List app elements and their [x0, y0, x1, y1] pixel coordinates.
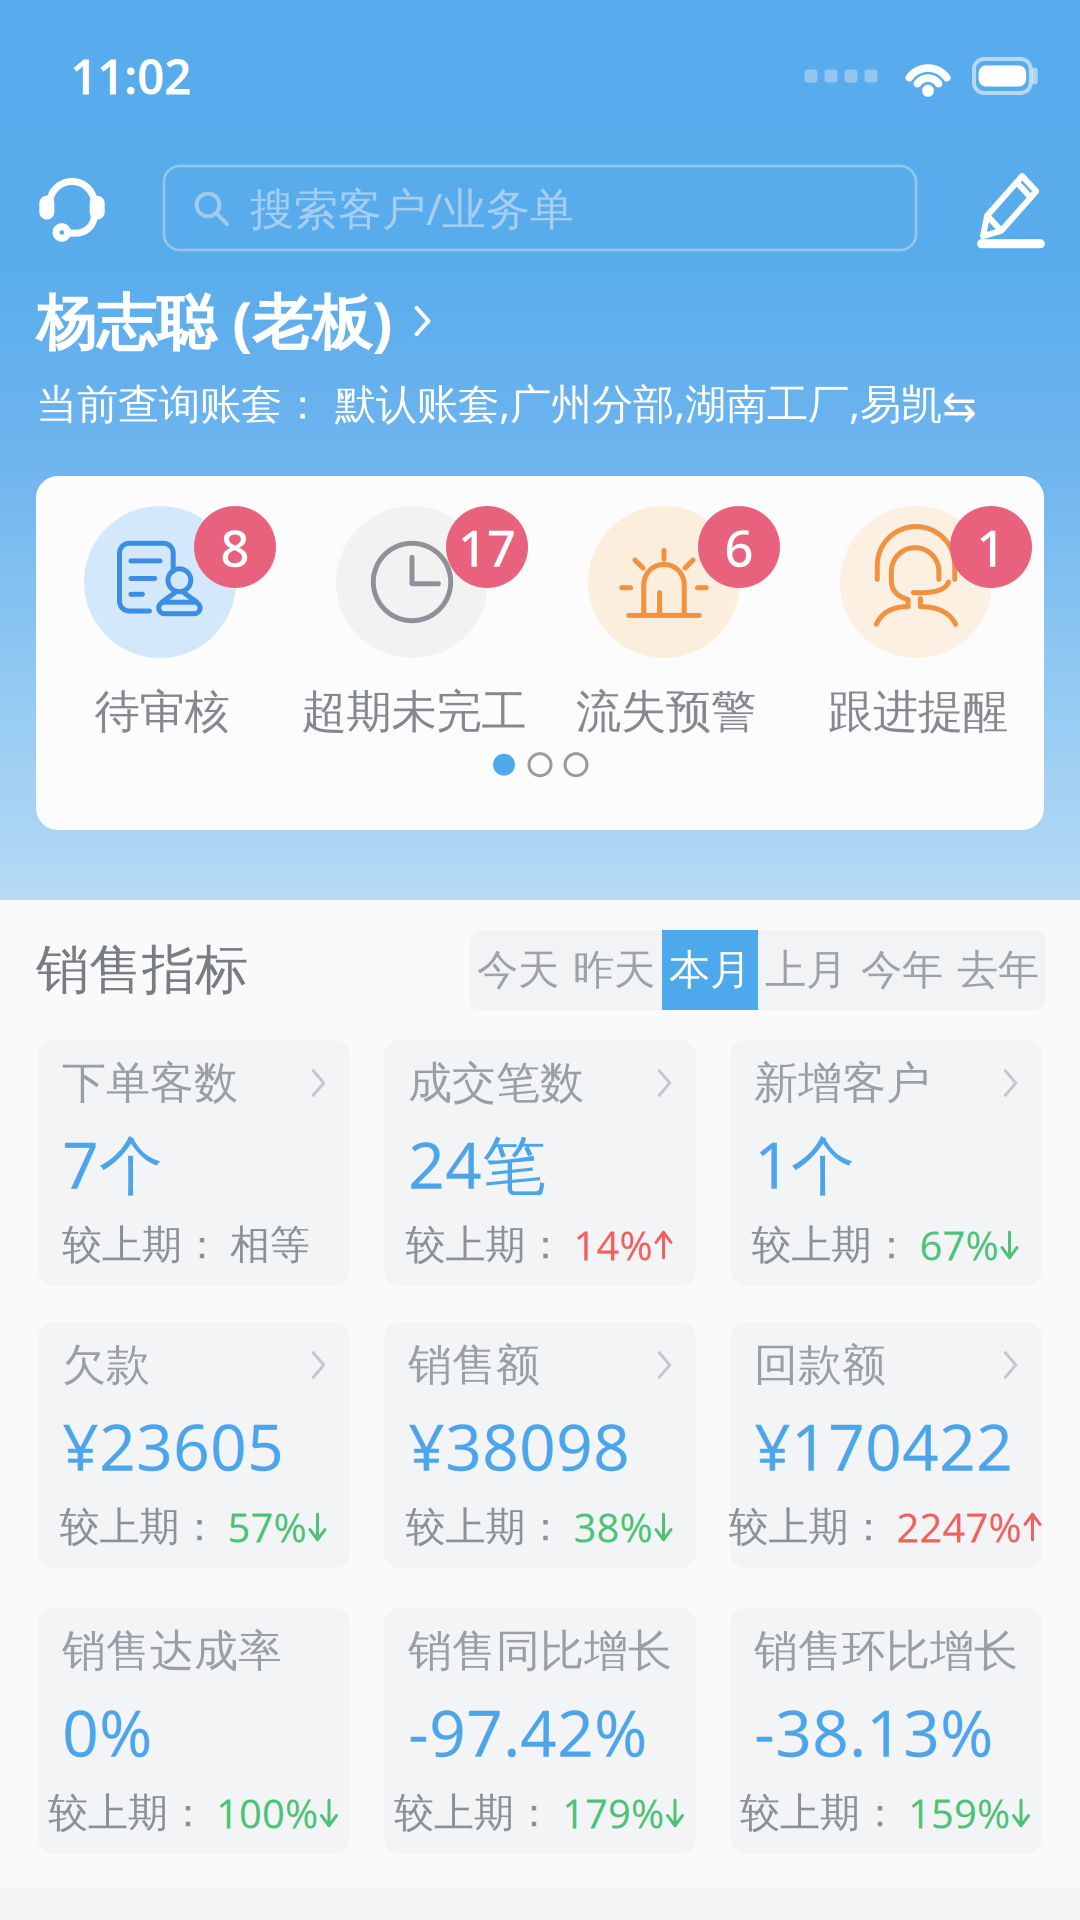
staticText: 今年	[861, 945, 943, 995]
staticText: 较上期：	[48, 1788, 208, 1837]
button[interactable]: 销售达成率	[38, 1608, 350, 1854]
button[interactable]: 回款额	[730, 1322, 1042, 1568]
staticText: 杨志聪 (老板)	[36, 281, 392, 361]
staticText: 销售环比增长	[754, 1624, 1018, 1678]
staticText: 销售指标	[36, 937, 248, 1003]
staticText: 流失预警	[576, 684, 756, 740]
staticText: 较上期：	[740, 1788, 900, 1837]
staticText: 57%	[227, 1500, 306, 1553]
button[interactable]: Compose	[976, 170, 1046, 246]
staticText: 0%	[62, 1689, 152, 1774]
staticText: 去年	[957, 945, 1039, 995]
button[interactable]: 下单客数	[38, 1040, 350, 1286]
staticText: 本月	[669, 945, 751, 995]
staticText: 24笔	[408, 1121, 546, 1206]
staticText: 8	[220, 513, 249, 581]
staticText: 较上期：	[394, 1788, 554, 1837]
staticText: 搜索客户/业务单	[250, 179, 574, 237]
staticText: 较上期：	[405, 1220, 565, 1269]
staticText: 1个	[754, 1121, 855, 1206]
staticText: ¥38098	[408, 1403, 630, 1488]
staticText: 7个	[62, 1121, 163, 1206]
staticText: 较上期：	[751, 1220, 911, 1269]
button[interactable]: 销售额	[384, 1322, 696, 1568]
staticText: 较上期：	[59, 1502, 219, 1551]
staticText: 6	[724, 513, 753, 581]
staticText: 较上期：	[728, 1502, 888, 1551]
button[interactable]: 上月	[758, 930, 854, 1010]
staticText: 回款额	[754, 1338, 886, 1392]
staticText: 成交笔数	[408, 1056, 584, 1110]
staticText: 当前查询账套： 默认账套,广州分部,湖南工厂,易凯⇆	[36, 376, 977, 430]
staticText: 38%	[573, 1500, 652, 1553]
staticText: 上月	[765, 945, 847, 995]
staticText: ¥23605	[62, 1403, 284, 1488]
staticText: 相等	[230, 1220, 310, 1269]
button[interactable]: 去年	[950, 930, 1046, 1010]
button[interactable]: 搜索客户/业务单	[164, 166, 916, 250]
staticText: 待审核	[94, 684, 229, 740]
button[interactable]: 成交笔数	[384, 1040, 696, 1286]
staticText: 销售达成率	[62, 1624, 282, 1678]
staticText: 17	[458, 513, 516, 581]
staticText: 昨天	[573, 945, 655, 995]
staticText: 100%	[216, 1786, 318, 1839]
staticText: 2247%	[896, 1500, 1021, 1553]
staticText: 今天	[477, 945, 559, 995]
button[interactable]: Customer service	[38, 174, 106, 242]
button[interactable]: 17	[288, 506, 540, 740]
button[interactable]: 销售环比增长	[730, 1608, 1042, 1854]
staticText: -38.13%	[754, 1689, 993, 1774]
staticText: 14%	[573, 1218, 652, 1271]
button[interactable]: 8	[36, 506, 288, 740]
button[interactable]: 销售同比增长	[384, 1608, 696, 1854]
staticText: 销售额	[408, 1338, 540, 1392]
staticText: ¥170422	[754, 1403, 1013, 1488]
staticText: 1	[976, 513, 1005, 581]
staticText: 跟进提醒	[828, 684, 1008, 740]
staticText: 下单客数	[62, 1056, 238, 1110]
staticText: 较上期：	[62, 1220, 222, 1269]
button[interactable]: 杨志聪 (老板)	[36, 292, 1080, 350]
button[interactable]: 6	[540, 506, 792, 740]
staticText: 新增客户	[754, 1056, 930, 1110]
staticText: 较上期：	[405, 1502, 565, 1551]
staticText: 销售同比增长	[408, 1624, 672, 1678]
staticText: 欠款	[62, 1338, 150, 1392]
staticText: 159%	[908, 1786, 1010, 1839]
staticText: 11:02	[70, 44, 191, 108]
staticText: 超期未完工	[301, 684, 526, 740]
staticText: -97.42%	[408, 1689, 647, 1774]
button[interactable]: 本月	[662, 930, 758, 1010]
button[interactable]: 新增客户	[730, 1040, 1042, 1286]
button[interactable]: 今年	[854, 930, 950, 1010]
button[interactable]: 1	[792, 506, 1044, 740]
staticText: 179%	[562, 1786, 664, 1839]
button[interactable]: 昨天	[566, 930, 662, 1010]
button[interactable]: 今天	[470, 930, 566, 1010]
staticText: 67%	[919, 1218, 998, 1271]
button[interactable]: 欠款	[38, 1322, 350, 1568]
